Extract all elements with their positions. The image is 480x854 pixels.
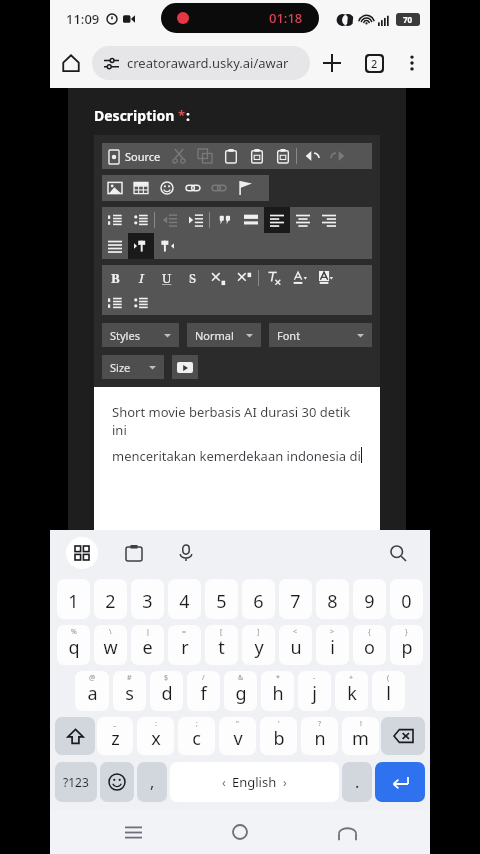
button[interactable]: Image bbox=[102, 175, 128, 201]
button[interactable]: Background color bbox=[313, 265, 339, 291]
button[interactable]: Decrease indent bbox=[157, 207, 183, 233]
button[interactable]: Superscript bbox=[232, 265, 258, 291]
button[interactable]: Cut bbox=[166, 143, 192, 169]
button[interactable]: Source bbox=[102, 147, 166, 166]
button[interactable]: Bold bbox=[102, 265, 128, 291]
button[interactable]: Size bbox=[102, 355, 164, 379]
button[interactable]: Unlink bbox=[206, 175, 232, 201]
button[interactable]: Table bbox=[128, 175, 154, 201]
button[interactable]: Paste from Word bbox=[270, 143, 296, 169]
button[interactable]: Underline bbox=[154, 265, 180, 291]
button[interactable]: @ bbox=[75, 671, 109, 711]
button[interactable]: * bbox=[261, 671, 294, 711]
button[interactable]: , bbox=[137, 762, 167, 802]
button[interactable]: . bbox=[342, 762, 372, 802]
button[interactable]: Bulleted list bbox=[128, 207, 154, 233]
button[interactable]: Div container bbox=[238, 207, 264, 233]
button[interactable]: ! bbox=[342, 717, 379, 755]
button[interactable]: Back bbox=[323, 810, 371, 854]
button[interactable]: Font bbox=[269, 323, 372, 347]
button[interactable]: Subscript bbox=[206, 265, 232, 291]
button[interactable]: Clipboard bbox=[118, 537, 150, 569]
button[interactable]: Recents bbox=[109, 810, 157, 854]
button[interactable]: 3 bbox=[131, 579, 164, 619]
button[interactable]: 9 bbox=[353, 579, 386, 619]
button[interactable]: Right to left bbox=[154, 233, 180, 259]
button[interactable]: Align center bbox=[290, 207, 316, 233]
button[interactable]: Toolbar bbox=[66, 537, 98, 569]
button[interactable]: 1 bbox=[57, 579, 90, 619]
button[interactable]: Tabs bbox=[354, 43, 394, 83]
button[interactable]: $ bbox=[150, 671, 183, 711]
button[interactable]: Undo bbox=[299, 143, 325, 169]
button[interactable]: Emoji bbox=[100, 762, 134, 802]
button[interactable]: : bbox=[137, 717, 174, 755]
button[interactable]: + bbox=[335, 671, 368, 711]
button[interactable]: Home bbox=[216, 810, 264, 854]
button[interactable]: & bbox=[224, 671, 257, 711]
button[interactable]: 4 bbox=[168, 579, 201, 619]
button[interactable]: 8 bbox=[316, 579, 349, 619]
button[interactable]: Increase indent bbox=[183, 207, 209, 233]
button[interactable]: Align left bbox=[264, 207, 290, 233]
button[interactable]: Remove format bbox=[261, 265, 287, 291]
button[interactable]: Justify bbox=[102, 233, 128, 259]
button[interactable]: Paste as text bbox=[244, 143, 270, 169]
staticText: e bbox=[142, 635, 153, 660]
button[interactable]: Text color bbox=[287, 265, 313, 291]
button[interactable]: = bbox=[168, 625, 201, 665]
button[interactable]: > bbox=[316, 625, 349, 665]
button[interactable]: _ bbox=[97, 717, 133, 755]
button[interactable]: Emoji bbox=[154, 175, 180, 201]
button[interactable]: ] bbox=[242, 625, 275, 665]
button[interactable]: { bbox=[353, 625, 386, 665]
button[interactable]: 2 bbox=[94, 579, 127, 619]
button[interactable]: 6 bbox=[242, 579, 275, 619]
button[interactable]: Strikethrough bbox=[180, 265, 206, 291]
button[interactable]: Styles bbox=[102, 323, 179, 347]
button[interactable]: Normal bbox=[187, 323, 261, 347]
button[interactable]: ; bbox=[178, 717, 215, 755]
button[interactable]: Shift bbox=[55, 717, 95, 755]
button[interactable]: Home bbox=[50, 42, 92, 84]
button[interactable]: creatoraward.usky.ai/awar bbox=[92, 46, 310, 80]
button[interactable]: Anchor bbox=[232, 175, 258, 201]
button[interactable]: Block quote bbox=[212, 207, 238, 233]
button[interactable]: Insert media bbox=[172, 355, 198, 379]
button[interactable]: " bbox=[219, 717, 256, 755]
button[interactable]: Redo bbox=[325, 143, 351, 169]
button[interactable]: | bbox=[131, 625, 164, 665]
button[interactable]: 7 bbox=[279, 579, 312, 619]
button[interactable]: ‹ bbox=[170, 762, 339, 802]
button[interactable]: Align right bbox=[316, 207, 342, 233]
button[interactable]: Search bbox=[382, 537, 414, 569]
button[interactable]: < bbox=[279, 625, 312, 665]
button[interactable]: [ bbox=[205, 625, 238, 665]
button[interactable]: 5 bbox=[205, 579, 238, 619]
button[interactable]: Numbered list bbox=[102, 207, 128, 233]
button[interactable]: New tab bbox=[310, 41, 354, 85]
button[interactable]: Copy bbox=[192, 143, 218, 169]
button[interactable]: More options bbox=[394, 45, 430, 81]
button[interactable]: Italic bbox=[128, 265, 154, 291]
button[interactable]: Bulleted list 2 bbox=[128, 291, 154, 315]
button[interactable]: } bbox=[390, 625, 423, 665]
button[interactable]: Link bbox=[180, 175, 206, 201]
button[interactable]: - bbox=[298, 671, 331, 711]
staticText: i bbox=[330, 635, 335, 660]
button[interactable]: \ bbox=[94, 625, 127, 665]
button[interactable]: % bbox=[57, 625, 90, 665]
button[interactable]: ?123 bbox=[55, 762, 97, 802]
button[interactable]: ' bbox=[260, 717, 297, 755]
button[interactable]: ? bbox=[301, 717, 338, 755]
button[interactable]: ( bbox=[372, 671, 405, 711]
button[interactable]: Left to right bbox=[128, 233, 154, 259]
button[interactable]: / bbox=[187, 671, 220, 711]
button[interactable]: Enter bbox=[375, 762, 425, 802]
button[interactable]: Backspace bbox=[381, 717, 425, 755]
button[interactable]: # bbox=[113, 671, 146, 711]
button[interactable]: 0 bbox=[390, 579, 423, 619]
button[interactable]: Voice input bbox=[170, 537, 202, 569]
button[interactable]: Paste bbox=[218, 143, 244, 169]
button[interactable]: Numbered list 2 bbox=[102, 291, 128, 315]
